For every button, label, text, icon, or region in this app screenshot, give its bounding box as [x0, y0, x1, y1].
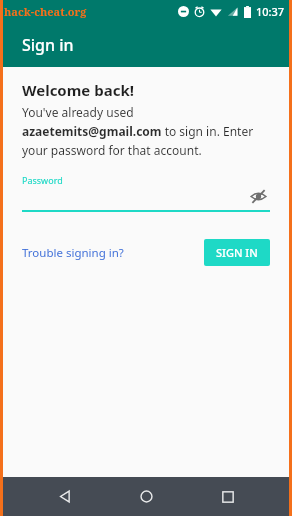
staticText: 10:37: [256, 4, 285, 19]
staticText: Trouble signing in?: [22, 245, 124, 261]
staticText: SIGN IN: [216, 245, 258, 260]
staticText: You've already used azaetemits@gmail.com…: [22, 104, 270, 158]
button[interactable]: Trouble signing in?: [22, 241, 124, 265]
button[interactable]: Back: [45, 477, 85, 516]
button[interactable]: SIGN IN: [204, 239, 270, 266]
button[interactable]: Recents: [208, 477, 248, 516]
staticText: Welcome back!: [22, 80, 134, 100]
staticText: hack-cheat.org: [4, 4, 87, 19]
staticText: Sign in: [22, 34, 74, 56]
button[interactable]: Home: [126, 477, 166, 516]
button[interactable]: Show password: [246, 184, 270, 208]
staticText: Password: [22, 174, 63, 186]
